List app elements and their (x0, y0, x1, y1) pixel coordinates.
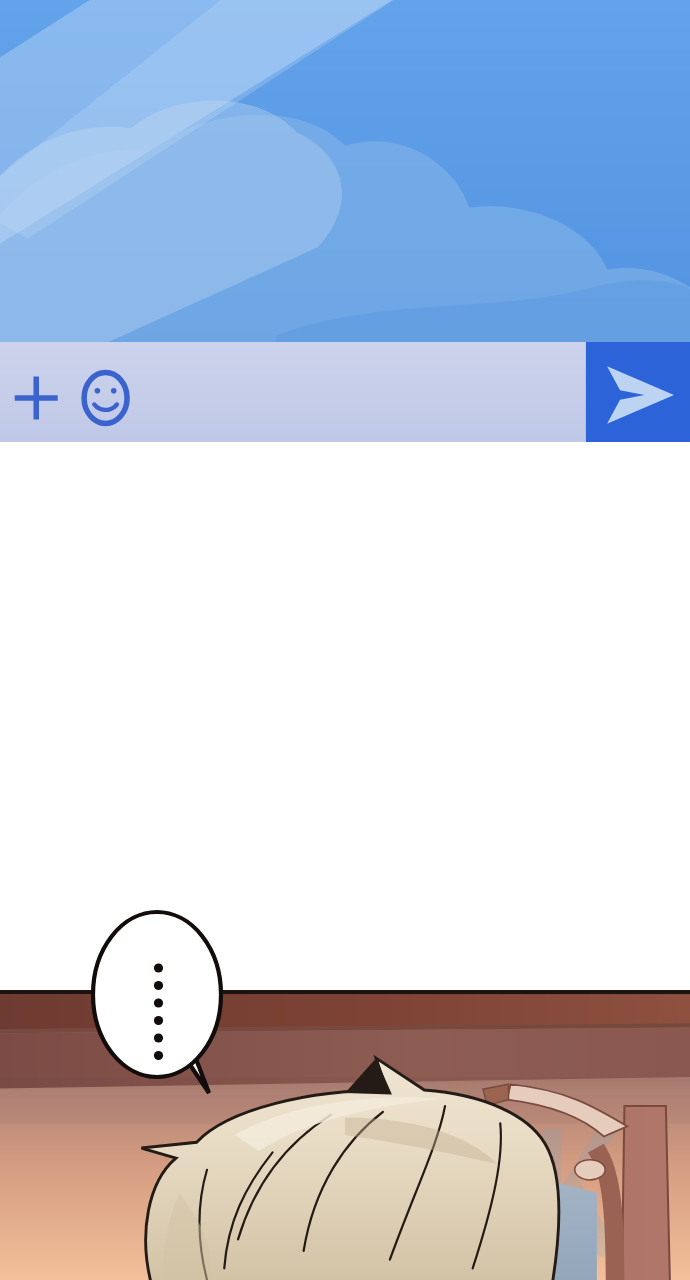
button[interactable]: Send (586, 342, 690, 442)
button[interactable] (0, 342, 690, 442)
